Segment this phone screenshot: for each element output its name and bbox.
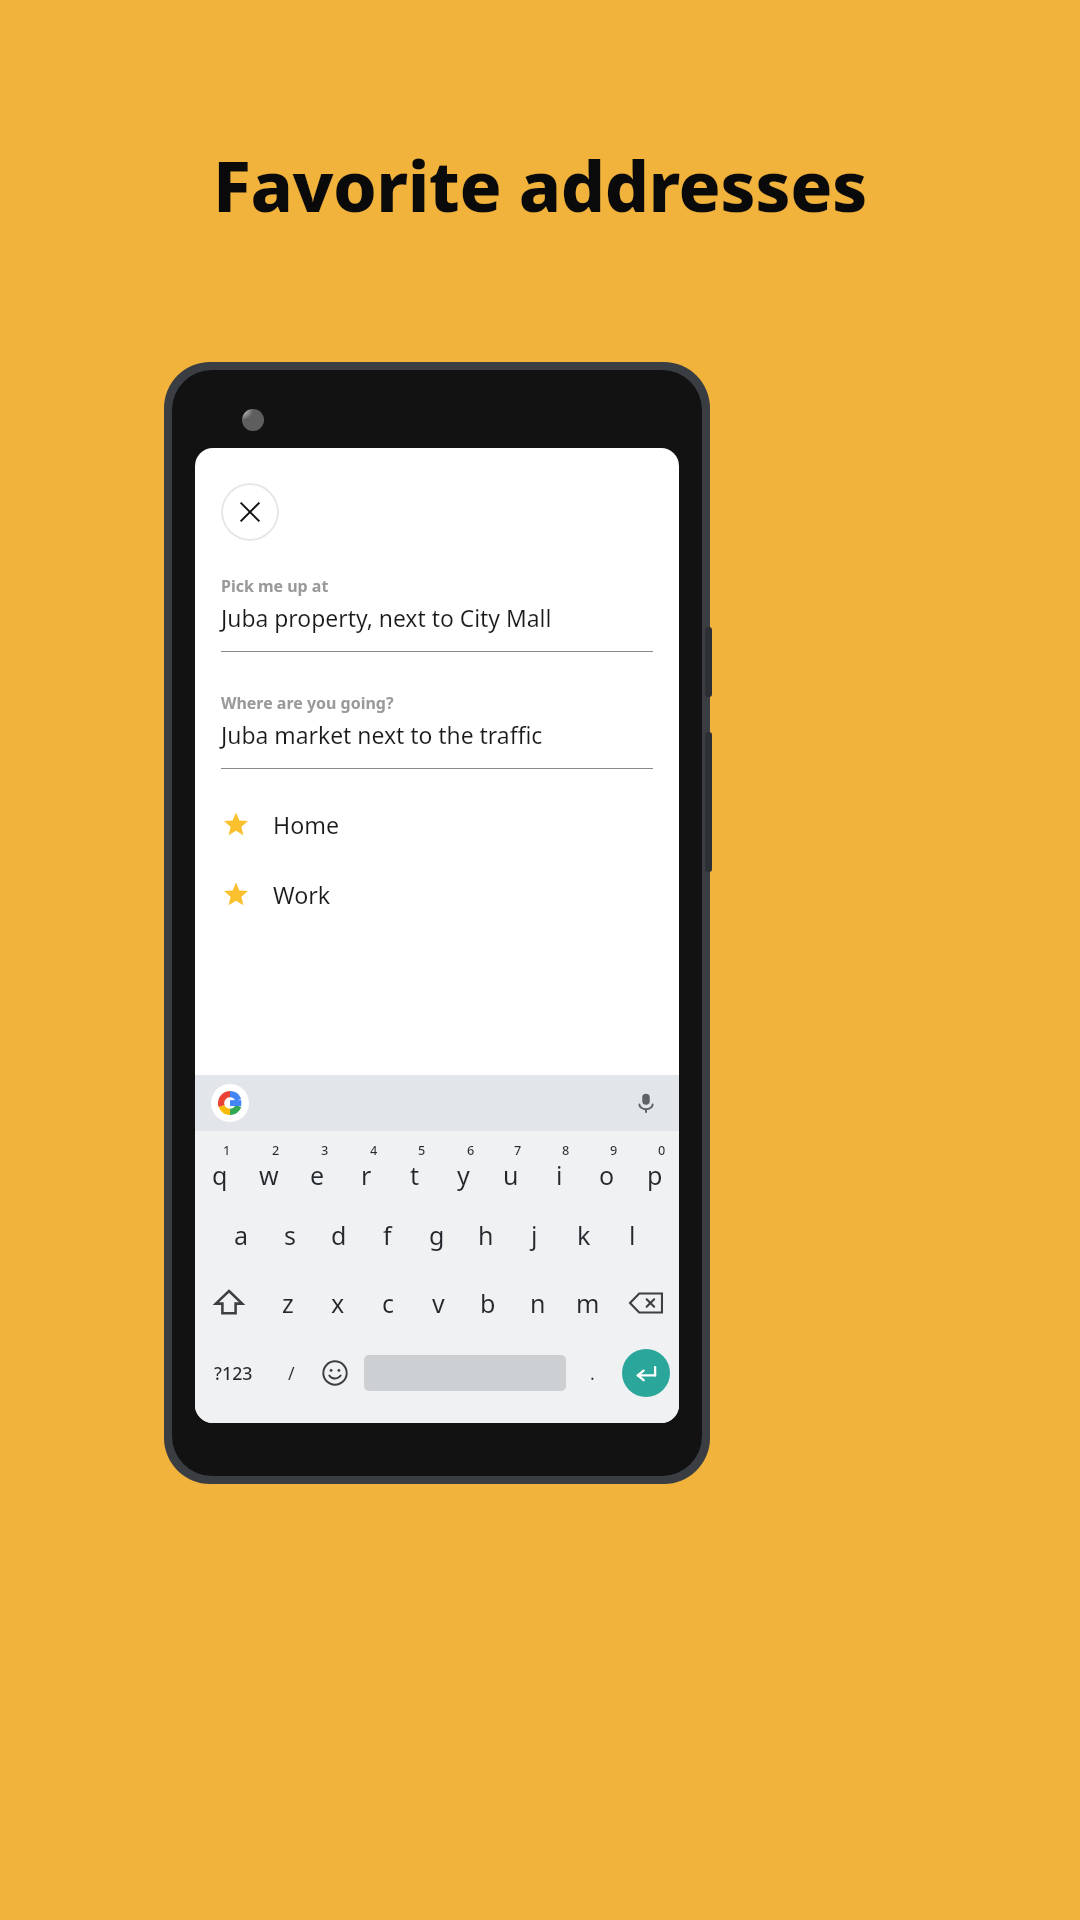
staticText: s: [284, 1218, 296, 1252]
button[interactable]: b: [463, 1269, 513, 1337]
button[interactable]: d: [314, 1201, 363, 1269]
button[interactable]: Work: [195, 869, 679, 921]
button[interactable]: s: [265, 1201, 314, 1269]
staticText: 2: [272, 1141, 280, 1158]
staticText: r: [361, 1158, 372, 1192]
staticText: n: [530, 1286, 546, 1320]
staticText: d: [331, 1218, 347, 1252]
button[interactable]: 9: [583, 1131, 631, 1201]
staticText: Juba market next to the traffic: [221, 720, 543, 751]
staticText: v: [432, 1286, 445, 1320]
button[interactable]: v: [413, 1269, 463, 1337]
staticText: Juba property, next to City Mall: [221, 603, 552, 634]
button[interactable]: x: [313, 1269, 363, 1337]
staticText: Pick me up at: [221, 575, 329, 597]
staticText: .: [590, 1361, 595, 1385]
staticText: 5: [418, 1141, 426, 1158]
staticText: p: [647, 1158, 663, 1192]
button[interactable]: g: [412, 1201, 461, 1269]
staticText: e: [310, 1158, 325, 1192]
button[interactable]: Voice input: [631, 1088, 661, 1118]
button[interactable]: a: [217, 1201, 265, 1269]
staticText: f: [383, 1218, 392, 1252]
button[interactable]: Shift: [195, 1269, 262, 1337]
button[interactable]: l: [608, 1201, 657, 1269]
button[interactable]: 6: [439, 1131, 487, 1201]
staticText: a: [234, 1218, 249, 1252]
button[interactable]: Home: [195, 799, 679, 851]
staticText: l: [629, 1218, 636, 1252]
button[interactable]: 0: [631, 1131, 679, 1201]
button[interactable]: 5: [391, 1131, 439, 1201]
button[interactable]: z: [262, 1269, 313, 1337]
staticText: /: [288, 1361, 295, 1385]
staticText: 4: [370, 1141, 378, 1158]
button[interactable]: h: [461, 1201, 510, 1269]
staticText: i: [556, 1158, 563, 1192]
button[interactable]: Enter: [622, 1349, 670, 1397]
button[interactable]: j: [510, 1201, 559, 1269]
button[interactable]: 1: [195, 1131, 244, 1201]
staticText: o: [599, 1158, 615, 1192]
button[interactable]: Close: [221, 483, 279, 541]
button[interactable]: Pick me up at: [221, 575, 653, 652]
staticText: h: [478, 1218, 494, 1252]
button[interactable]: 2: [244, 1131, 293, 1201]
button[interactable]: ?123: [195, 1337, 271, 1409]
staticText: j: [531, 1218, 538, 1252]
staticText: q: [212, 1158, 228, 1192]
button[interactable]: Emoji: [312, 1337, 358, 1409]
button[interactable]: Backspace: [613, 1269, 679, 1337]
staticText: 9: [610, 1141, 618, 1158]
staticText: Where are you going?: [221, 692, 394, 714]
button[interactable]: Google: [211, 1084, 249, 1122]
button[interactable]: c: [363, 1269, 413, 1337]
staticText: t: [410, 1158, 420, 1192]
button[interactable]: k: [559, 1201, 608, 1269]
staticText: Work: [273, 879, 331, 911]
staticText: g: [429, 1218, 445, 1252]
staticText: b: [480, 1286, 496, 1320]
button[interactable]: f: [363, 1201, 412, 1269]
staticText: 0: [658, 1141, 666, 1158]
staticText: w: [259, 1158, 279, 1192]
staticText: y: [457, 1158, 470, 1192]
staticText: Favorite addresses: [0, 138, 1080, 233]
button[interactable]: 7: [487, 1131, 535, 1201]
staticText: 8: [562, 1141, 570, 1158]
staticText: 7: [514, 1141, 522, 1158]
staticText: 1: [223, 1141, 231, 1158]
button[interactable]: Where are you going?: [221, 692, 653, 769]
staticText: m: [576, 1286, 600, 1320]
staticText: Home: [273, 809, 340, 841]
staticText: z: [282, 1286, 294, 1320]
button[interactable]: n: [513, 1269, 563, 1337]
staticText: ?123: [214, 1361, 253, 1385]
button[interactable]: 3: [293, 1131, 342, 1201]
button[interactable]: m: [563, 1269, 613, 1337]
button[interactable]: /: [271, 1337, 312, 1409]
staticText: c: [382, 1286, 395, 1320]
button[interactable]: 8: [535, 1131, 583, 1201]
button[interactable]: 4: [342, 1131, 391, 1201]
staticText: k: [577, 1218, 591, 1252]
staticText: 3: [321, 1141, 329, 1158]
staticText: 6: [467, 1141, 475, 1158]
button[interactable]: .: [572, 1337, 613, 1409]
staticText: u: [503, 1158, 519, 1192]
staticText: x: [331, 1286, 345, 1320]
